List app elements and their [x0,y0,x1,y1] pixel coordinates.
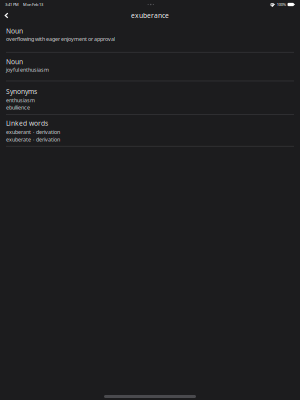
staticText: 3:41 PM [5,2,19,7]
staticText: ebullience [6,104,30,111]
staticText: Synonyms [6,87,37,96]
staticText: overflowing with eager enjoyment or appr… [6,35,115,42]
staticText: Noun [6,26,23,35]
button[interactable]: enthusiasm [6,96,294,104]
staticText: Mon Feb 13 [23,2,43,7]
button[interactable]: exuberate · derivation [6,136,294,143]
button[interactable]: ebullience [6,104,294,111]
button[interactable]: Back [1,10,12,21]
staticText: exuberance [131,11,169,20]
staticText: enthusiasm [6,96,35,104]
staticText: exuberant · derivation [6,128,60,135]
button[interactable]: exuberant · derivation [6,128,294,136]
staticText: exuberate · derivation [6,136,60,143]
staticText: Noun [6,57,23,66]
staticText: 100% [277,2,286,7]
staticText: joyful enthusiasm [6,66,49,73]
staticText: Linked words [6,119,48,128]
